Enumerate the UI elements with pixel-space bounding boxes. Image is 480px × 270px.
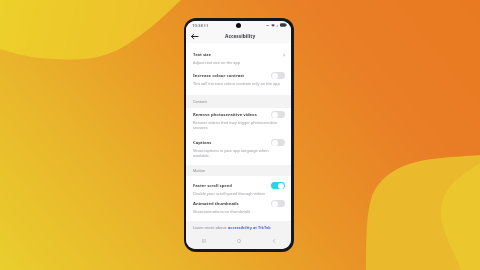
button[interactable]: Captions xyxy=(186,140,291,158)
staticText: Text size xyxy=(193,52,211,58)
button[interactable]: Captions off xyxy=(271,139,285,146)
button[interactable]: Increase colour contrast xyxy=(186,73,291,86)
button[interactable]: Recent apps xyxy=(186,234,221,248)
staticText: Learn more about xyxy=(193,225,228,230)
staticText: This will increase colour contrast only … xyxy=(193,81,280,86)
staticText: Double your scroll speed through videos xyxy=(193,191,266,196)
staticText: Content xyxy=(193,99,207,104)
staticText: Animated thumbnails xyxy=(193,201,239,207)
staticText: Adjust text size on the app xyxy=(193,60,241,65)
button[interactable]: Remove photosensitive videos xyxy=(186,112,291,130)
staticText: Show captions in your app language when … xyxy=(193,148,269,158)
staticText: Accessibility xyxy=(225,33,256,40)
staticText: Increase colour contrast xyxy=(193,73,245,79)
staticText: Faster scroll speed xyxy=(193,183,232,189)
button[interactable]: Learn more about xyxy=(193,225,271,230)
staticText: Captions xyxy=(193,140,212,146)
button[interactable]: Faster scroll speed xyxy=(186,183,291,196)
button[interactable]: Animated thumbnails off xyxy=(271,200,285,207)
staticText: Remove videos that may trigger photosens… xyxy=(193,120,278,130)
button[interactable]: Text size xyxy=(186,52,291,65)
staticText: Remove photosensitive videos xyxy=(193,112,257,118)
button[interactable]: Faster scroll speed on xyxy=(271,182,285,189)
button[interactable]: Remove photosensitive videos off xyxy=(271,111,285,118)
button[interactable]: Increase colour contrast off xyxy=(271,72,285,79)
staticText: 10:38 xyxy=(192,22,203,28)
staticText: accessibility at TikTok xyxy=(228,225,271,230)
button[interactable]: Animated thumbnails xyxy=(186,201,291,214)
staticText: Motion xyxy=(193,168,206,173)
button[interactable]: Back xyxy=(256,234,291,248)
button[interactable]: Home xyxy=(221,234,256,248)
button[interactable]: Back xyxy=(190,32,199,41)
staticText: Show animations on thumbnails xyxy=(193,209,251,214)
